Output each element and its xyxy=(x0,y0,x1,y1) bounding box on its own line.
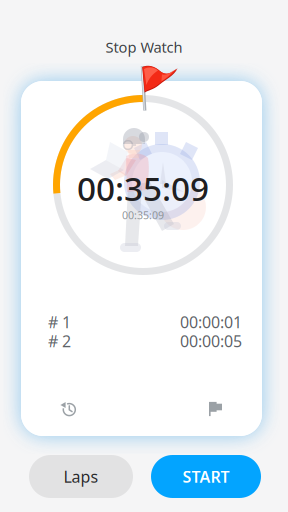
staticText: 00:00:01 xyxy=(180,311,242,333)
staticText: Laps xyxy=(63,466,98,487)
button[interactable]: History xyxy=(51,392,85,426)
button[interactable]: Flag lap xyxy=(199,392,233,426)
staticText: Stop Watch xyxy=(105,37,182,57)
staticText: 00:00:05 xyxy=(180,330,242,352)
button[interactable]: START xyxy=(151,455,261,498)
staticText: # 2 xyxy=(48,330,71,352)
button[interactable]: Laps xyxy=(29,455,133,498)
staticText: 00:35:09 xyxy=(122,208,164,222)
staticText: START xyxy=(182,466,229,487)
staticText: 00:35:09 xyxy=(77,166,209,210)
staticText: # 1 xyxy=(48,311,71,333)
